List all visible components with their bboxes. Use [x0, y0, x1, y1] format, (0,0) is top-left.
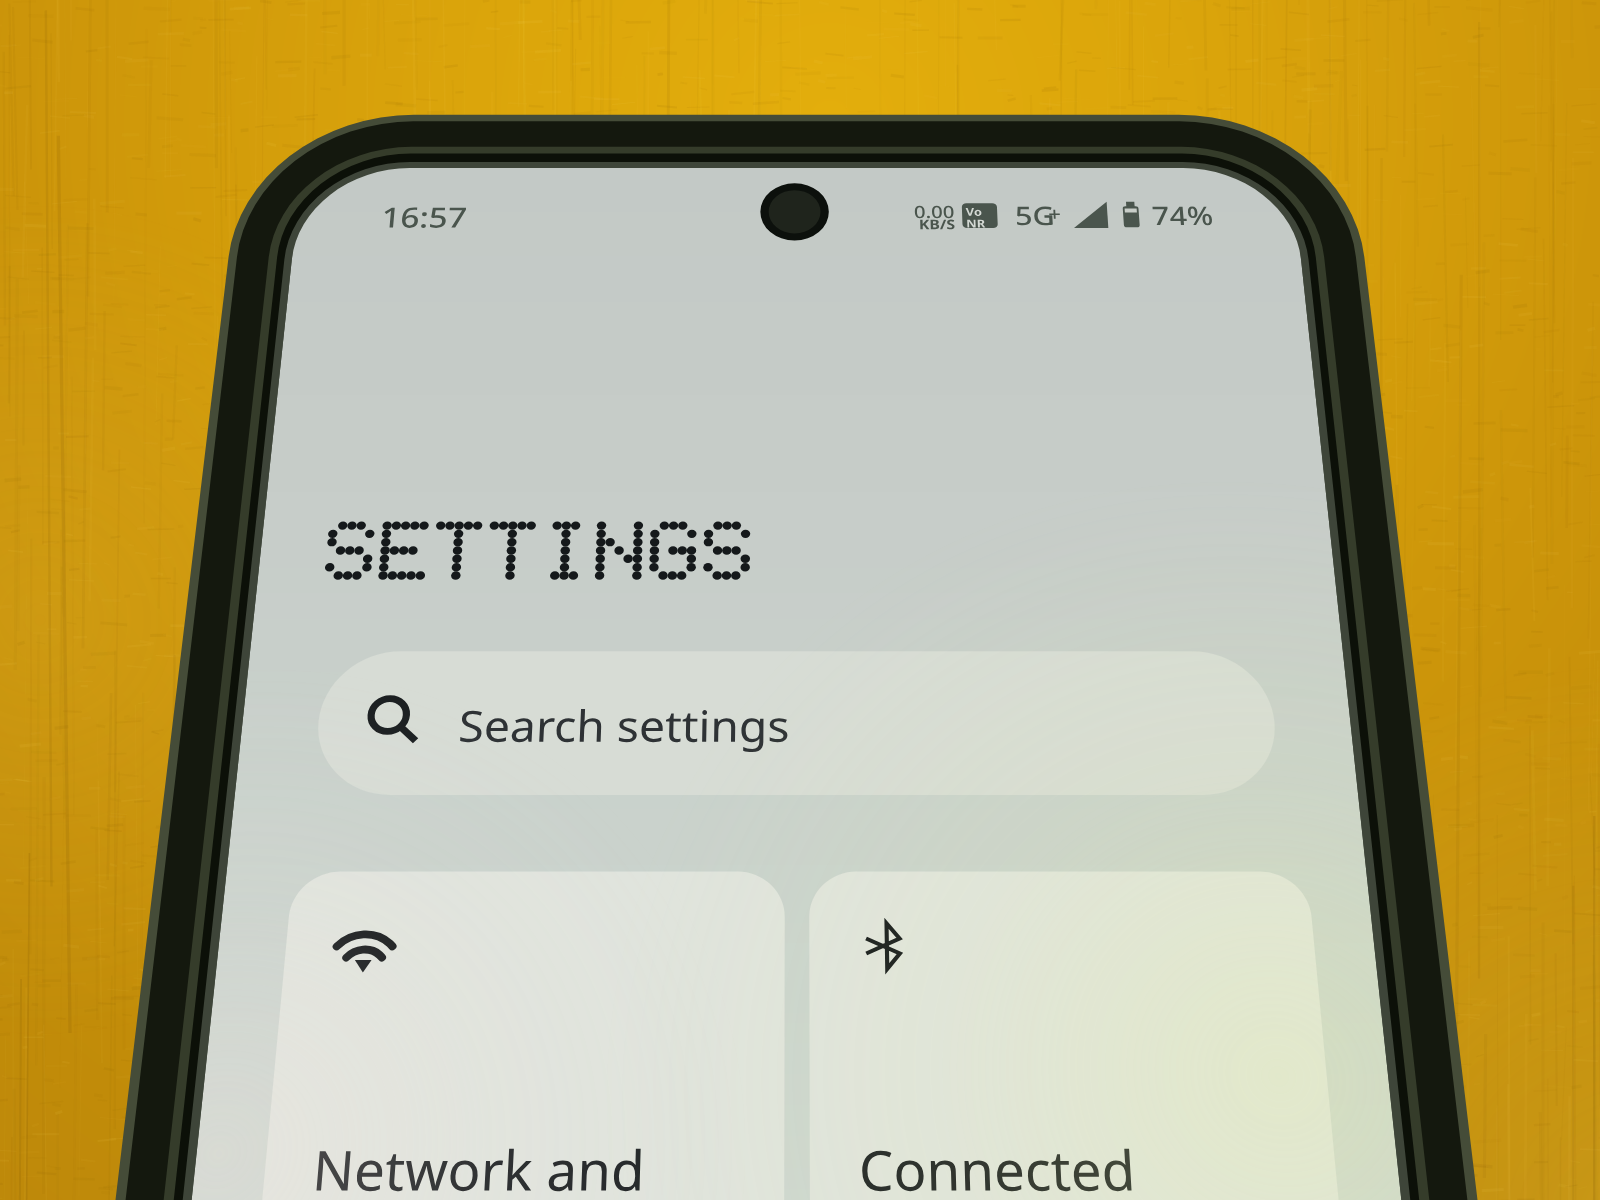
button[interactable]: Clock, 16:57 [372, 196, 468, 236]
button[interactable]: Connected devices [809, 871, 1308, 1200]
button[interactable]: Network and internet [293, 871, 784, 1200]
button[interactable]: Status icons, battery 74 percent [905, 196, 1220, 238]
button[interactable]: Search settings [311, 651, 1282, 796]
